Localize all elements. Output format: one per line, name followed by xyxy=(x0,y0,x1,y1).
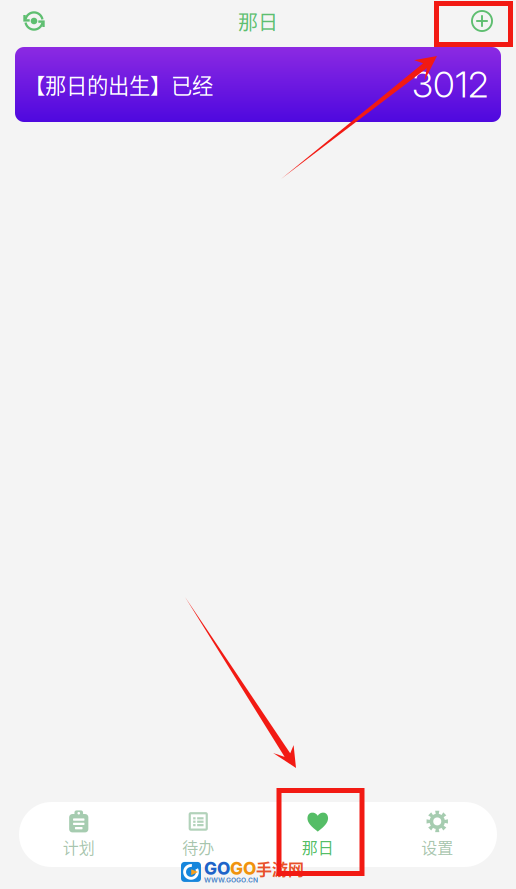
staticText: 3012 xyxy=(412,63,489,106)
button[interactable]: 待办 xyxy=(138,801,258,868)
staticText: 设置 xyxy=(421,835,453,859)
staticText: GO xyxy=(230,858,256,879)
button[interactable]: Add xyxy=(460,1,504,41)
button[interactable]: 计划 xyxy=(19,801,138,868)
button[interactable]: 设置 xyxy=(377,801,497,868)
staticText: 那日 xyxy=(238,6,278,35)
button[interactable]: 那日 xyxy=(258,801,377,868)
staticText: WWW.GOGO.CN xyxy=(204,876,258,884)
staticText: 【那日的出生】已经 xyxy=(24,69,213,100)
staticText: GO xyxy=(204,858,230,879)
button[interactable]: 【那日的出生】已经 xyxy=(15,47,501,122)
staticText: 待办 xyxy=(182,835,214,859)
staticText: 手游网 xyxy=(256,857,304,880)
staticText: 那日 xyxy=(302,835,334,859)
button[interactable]: Sync xyxy=(12,1,56,41)
staticText: 计划 xyxy=(63,835,95,859)
